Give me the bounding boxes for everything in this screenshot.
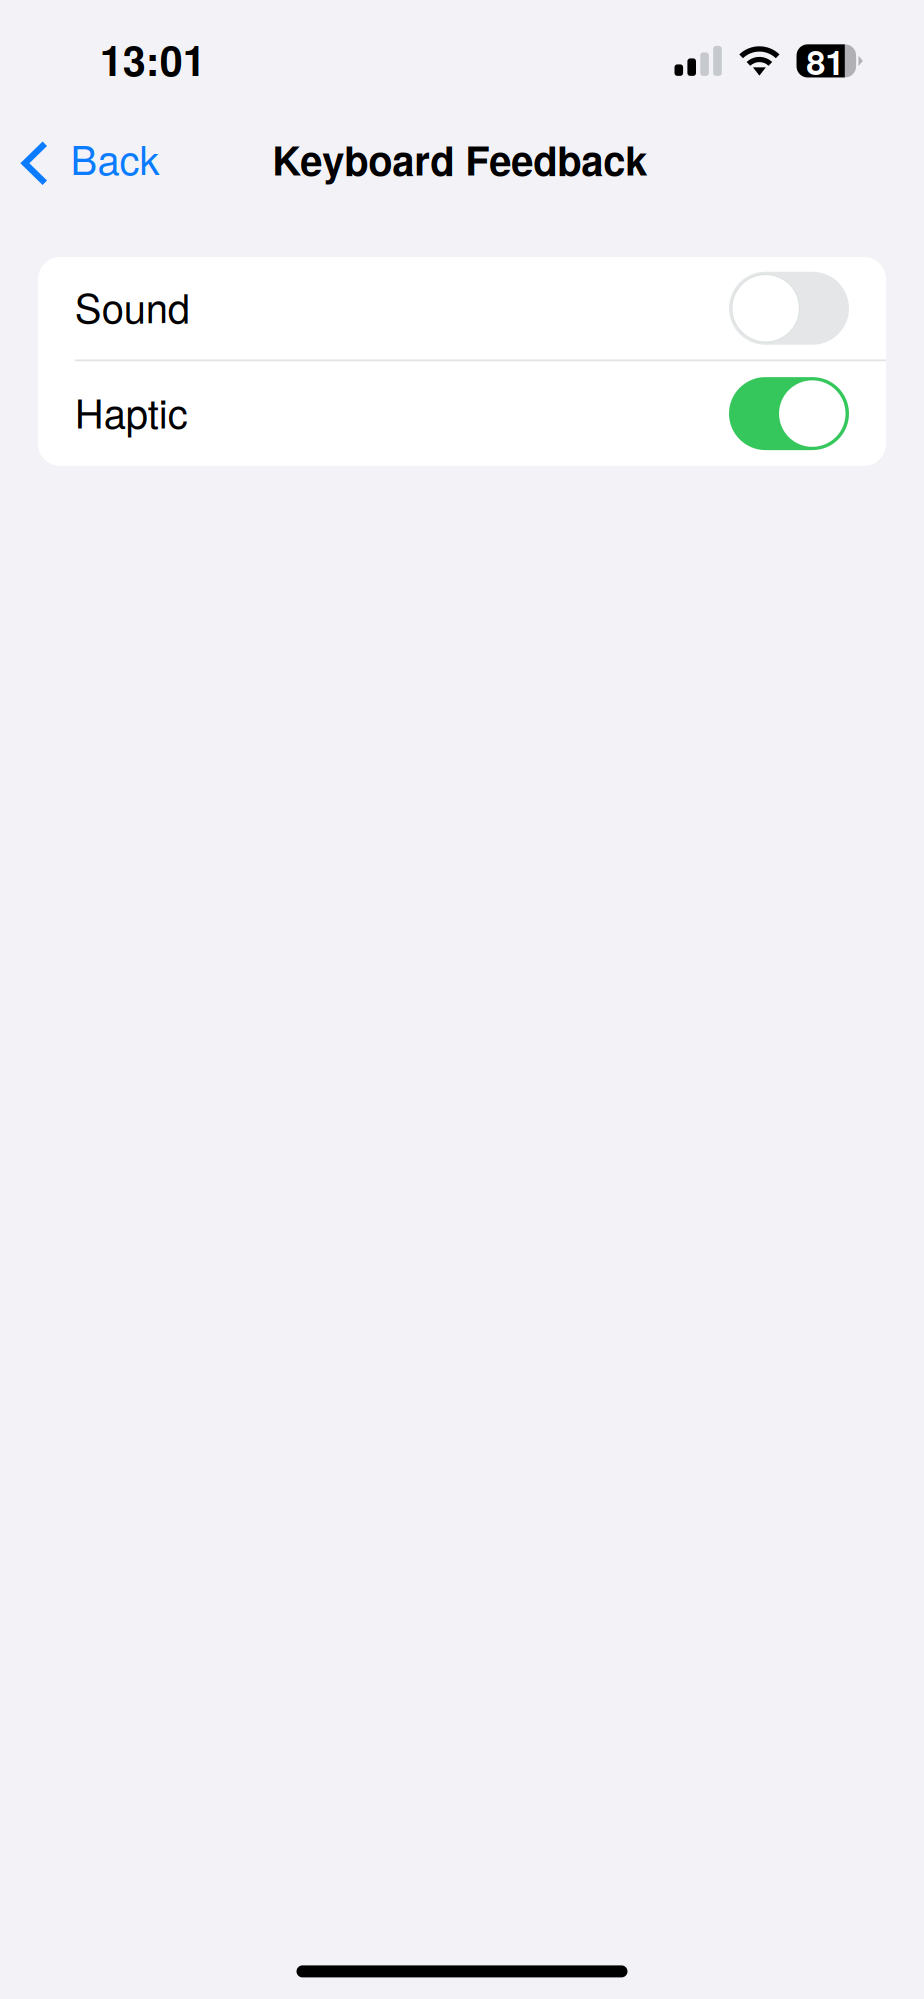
staticText: Sound [75,277,190,334]
staticText: 81 [806,36,844,86]
staticText: 13:01 [100,30,206,89]
button[interactable]: Sound [38,257,886,359]
button[interactable]: Haptic [38,361,886,466]
staticText: Back [71,129,160,186]
staticText: Haptic [75,383,188,440]
staticText: Keyboard Feedback [272,130,647,188]
button[interactable]: Back [0,121,180,207]
